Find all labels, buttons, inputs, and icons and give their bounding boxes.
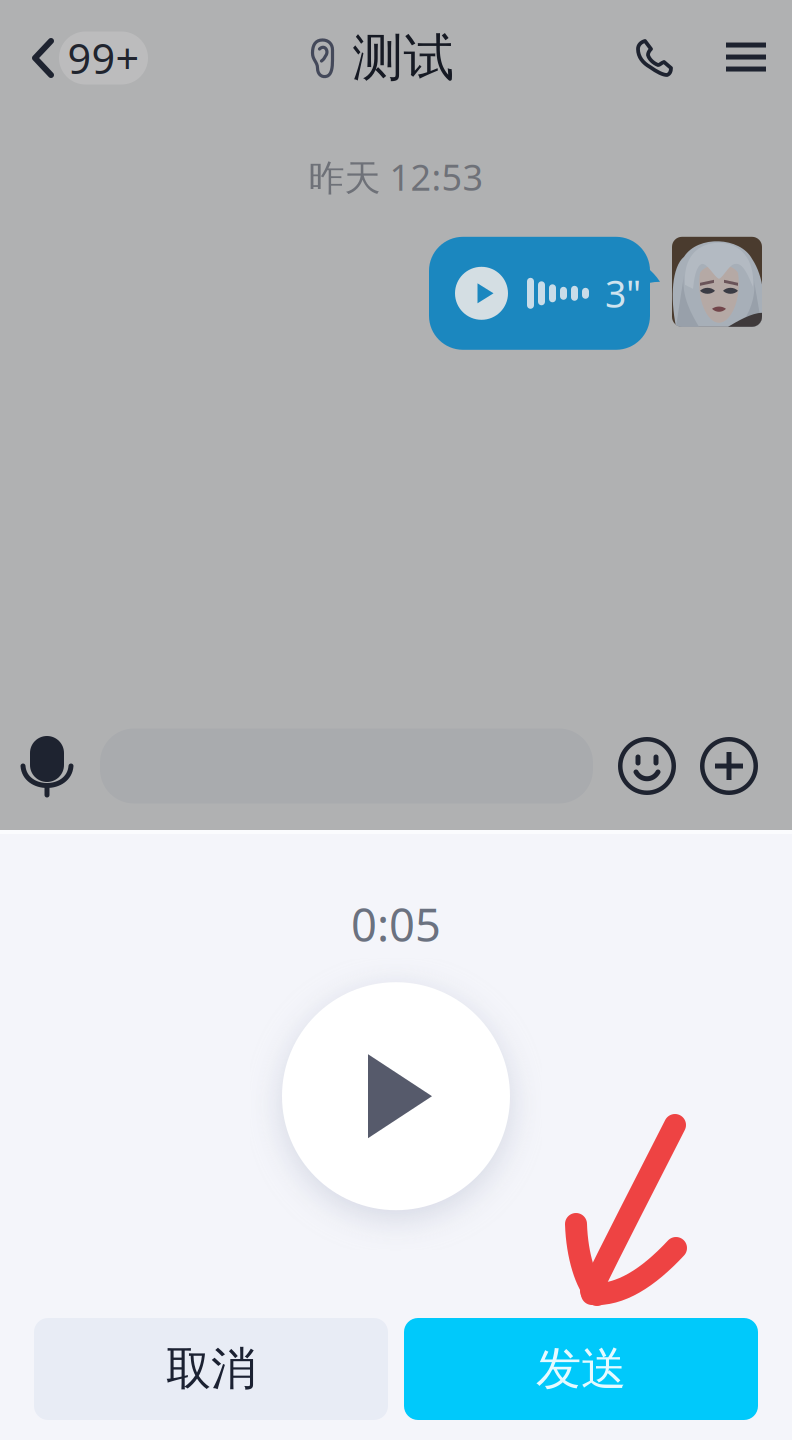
button[interactable]: Play recording (282, 982, 510, 1210)
button[interactable]: Back, 99+ unread (0, 0, 156, 116)
button[interactable]: Menu (710, 0, 782, 116)
staticText: 0:05 (351, 894, 441, 954)
staticText: 99+ (67, 31, 139, 85)
button[interactable]: 发送 (404, 1318, 758, 1420)
button[interactable]: Call (618, 0, 690, 116)
button[interactable]: Voice input (19, 711, 75, 821)
button[interactable]: More (700, 711, 758, 821)
staticText: 昨天 12:53 (308, 153, 483, 201)
staticText: 发送 (536, 1341, 626, 1397)
button[interactable]: Emoji (618, 711, 676, 821)
staticText: 测试 (352, 27, 454, 89)
staticText: 取消 (166, 1341, 256, 1397)
button[interactable]: 取消 (34, 1318, 388, 1420)
staticText: 3" (605, 268, 641, 318)
